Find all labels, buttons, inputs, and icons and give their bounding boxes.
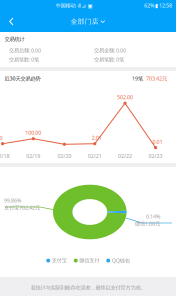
button[interactable]: 支付宝 xyxy=(46,257,67,264)
staticText: 0.01 xyxy=(153,138,163,145)
staticText: 02/19 xyxy=(26,152,40,160)
staticText: 微信支付 xyxy=(79,257,99,264)
staticText: 100.00 xyxy=(25,129,41,136)
staticText: 2.01 xyxy=(92,134,102,141)
staticText: 02/22 xyxy=(118,152,132,160)
staticText: 0.00 xyxy=(0,134,3,141)
staticText: 交易统计 xyxy=(4,36,24,43)
staticText: 若统计与实际到账存在误差，最终以支付官方为准。 xyxy=(30,284,145,291)
staticText: 02/21 xyxy=(88,152,102,160)
staticText: 交易笔数: 0笔 xyxy=(9,56,39,63)
staticText: 502.00 xyxy=(117,94,133,101)
staticText: 中国移动 ıll ⊿ ▣ xyxy=(55,2,92,9)
staticText: 99.86% xyxy=(4,197,21,204)
button[interactable]: 全部门店 xyxy=(68,13,108,30)
staticText: 微信1.00元 xyxy=(135,220,160,227)
staticText: 全部门店 xyxy=(71,17,99,26)
button[interactable]: Back xyxy=(4,11,19,32)
staticText: 62% ▮ 12:58 xyxy=(144,2,172,9)
staticText: 交易总额: 0.00 xyxy=(9,47,41,54)
staticText: 02/23 xyxy=(149,152,163,160)
staticText: 支付宝 xyxy=(52,257,67,264)
staticText: 703.42元 xyxy=(143,75,167,82)
staticText: 交易金额: 0.00 xyxy=(94,47,126,54)
staticText: 近30天交易趋势 xyxy=(4,75,40,82)
staticText: 支付宝702.42元 xyxy=(4,204,40,211)
staticText: 02/20 xyxy=(57,152,71,160)
staticText: QQ钱包 xyxy=(112,257,130,264)
staticText: 交易笔数: 0笔 xyxy=(94,56,124,63)
button[interactable]: 微信支付 xyxy=(74,257,99,264)
staticText: 19笔 xyxy=(132,75,143,82)
staticText: 02/18 xyxy=(0,152,10,160)
staticText: 0.14% xyxy=(146,213,160,220)
button[interactable]: QQ钱包 xyxy=(106,257,130,264)
